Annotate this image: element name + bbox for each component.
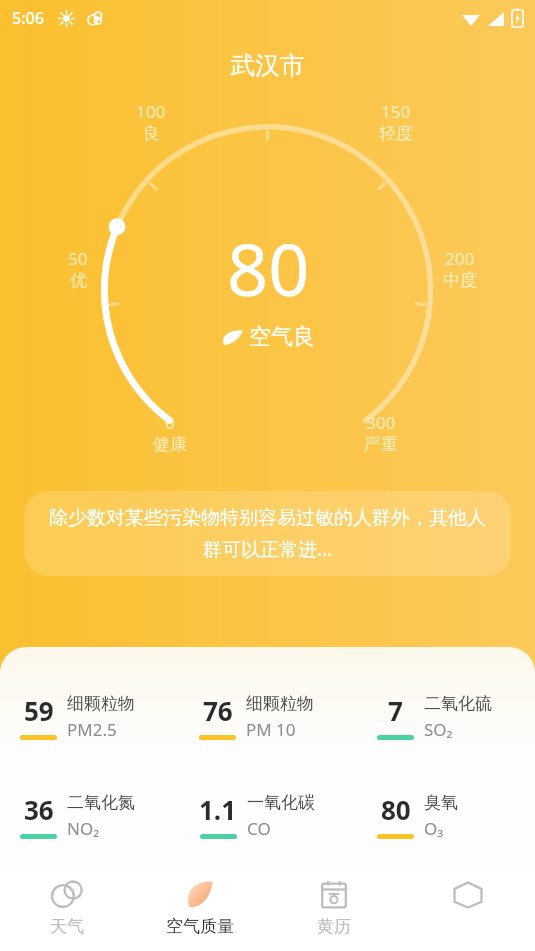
staticText: 空气良 <box>249 323 315 351</box>
staticText: PM 10 <box>246 718 296 741</box>
staticText: 健康 <box>153 434 187 455</box>
staticText: 除少数对某些污染物特别容易过敏的人群外，其他人群可以正常进… <box>44 506 491 561</box>
button[interactable]: 1.1 <box>179 766 357 865</box>
staticText: SO₂ <box>424 718 453 741</box>
staticText: 150 <box>381 100 411 123</box>
staticText: 1.1 <box>199 792 237 827</box>
button[interactable]: 天气 <box>0 865 133 951</box>
button[interactable]: 36 <box>0 766 179 865</box>
button[interactable]: 除少数对某些污染物特别容易过敏的人群外，其他人群可以正常进… <box>24 491 511 576</box>
staticText: 0 <box>165 411 175 434</box>
staticText: 黄历 <box>317 916 351 937</box>
staticText: 一氧化碳 <box>247 792 315 813</box>
staticText: NO₂ <box>67 817 100 840</box>
staticText: 300 <box>366 411 396 434</box>
staticText: 细颗粒物 <box>67 693 135 714</box>
button[interactable]: 80 <box>357 766 535 865</box>
button[interactable]: 黄历 <box>267 865 401 951</box>
staticText: 36 <box>24 792 54 827</box>
staticText: 武汉市 <box>0 50 535 81</box>
staticText: 二氧化氮 <box>67 792 135 813</box>
staticText: 100 <box>136 100 166 123</box>
staticText: 7 <box>388 693 403 728</box>
staticText: 200 <box>445 247 475 270</box>
button[interactable]: More <box>401 865 535 951</box>
staticText: 轻度 <box>379 123 413 144</box>
staticText: 细颗粒物 <box>246 693 314 714</box>
staticText: 天气 <box>50 916 84 937</box>
button[interactable]: 76 <box>179 667 357 766</box>
staticText: 良 <box>143 123 160 144</box>
staticText: 空气质量 <box>166 916 234 937</box>
staticText: 76 <box>203 693 233 728</box>
staticText: PM2.5 <box>67 718 117 741</box>
staticText: 优 <box>70 270 87 291</box>
button[interactable]: 7 <box>357 667 535 766</box>
staticText: 50 <box>68 247 88 270</box>
staticText: 5:06 <box>12 7 44 29</box>
staticText: 59 <box>24 693 54 728</box>
staticText: 80 <box>227 219 310 317</box>
staticText: CO <box>247 817 271 840</box>
button[interactable]: 59 <box>0 667 179 766</box>
staticText: 中度 <box>443 270 477 291</box>
staticText: 严重 <box>364 434 398 455</box>
button[interactable]: 空气质量 <box>133 865 267 951</box>
staticText: 80 <box>381 792 411 827</box>
staticText: 臭氧 <box>424 792 458 813</box>
staticText: O₃ <box>424 817 444 840</box>
staticText: 二氧化硫 <box>424 693 492 714</box>
